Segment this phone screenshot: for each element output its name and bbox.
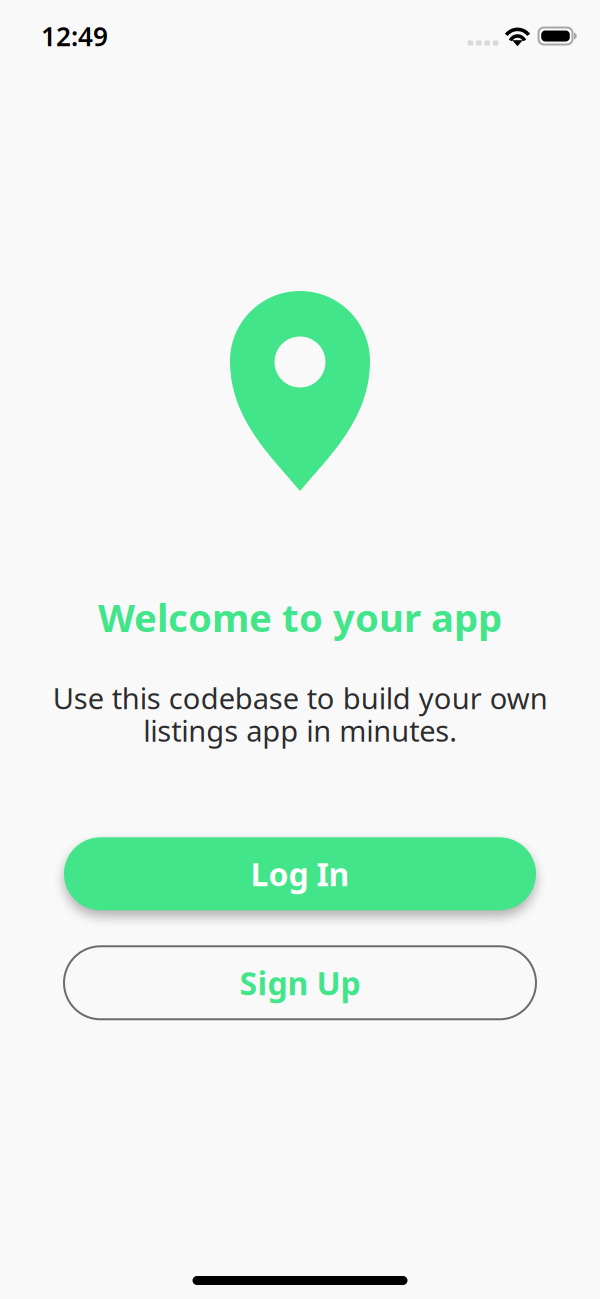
button[interactable]: Sign Up <box>64 946 536 1019</box>
button[interactable]: Log In <box>64 837 536 910</box>
staticText: Use this codebase to build your own list… <box>52 678 547 750</box>
staticText: Log In <box>250 852 349 896</box>
staticText: 12:49 <box>41 18 108 54</box>
staticText: Sign Up <box>239 961 360 1005</box>
staticText: Welcome to your app <box>98 591 502 643</box>
